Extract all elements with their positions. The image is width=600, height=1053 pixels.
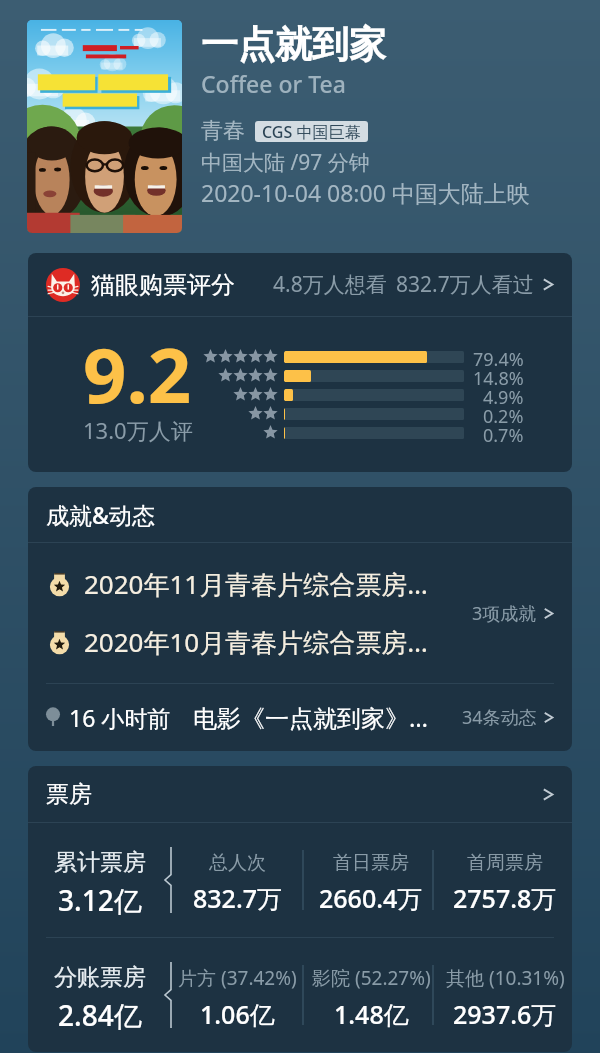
staticText: 0.2% (483, 404, 524, 423)
staticText: 9.2 (83, 322, 192, 426)
staticText: 片方 (37.42%) (178, 965, 297, 991)
staticText: 3.12亿 (58, 881, 142, 919)
staticText: 13.0万人评 (83, 415, 193, 445)
staticText: 79.4% (473, 347, 524, 366)
staticText: 电影《一点就到家》… (193, 701, 428, 734)
staticText: 成就&动态 (46, 499, 155, 530)
button[interactable]: 猫眼购票评分 (28, 253, 572, 316)
staticText: 青春 (201, 117, 245, 145)
staticText: 2757.8万 (453, 881, 557, 915)
staticText: 4.9% (483, 385, 524, 404)
staticText: 3项成就 (472, 601, 537, 626)
staticText: 2020-10-04 08:00 中国大陆上映 (201, 177, 530, 208)
staticText: 14.8% (473, 366, 524, 385)
button[interactable]: 票房 (28, 766, 572, 822)
staticText: 首日票房 (333, 851, 409, 875)
button[interactable]: Movie poster (27, 20, 182, 233)
staticText: 猫眼购票评分 (91, 270, 235, 300)
button[interactable]: 成就&动态 (28, 487, 572, 542)
staticText: 1.48亿 (334, 997, 409, 1031)
staticText: 2020年11月青春片综合票房… (84, 566, 428, 602)
staticText: 832.7万 (193, 881, 283, 915)
staticText: 0.7% (483, 423, 524, 442)
staticText: 中国大陆 /97 分钟 (201, 148, 370, 177)
staticText: 2937.6万 (453, 997, 557, 1031)
staticText: 2.84亿 (58, 996, 142, 1034)
staticText: 4.8万人想看 (273, 270, 387, 299)
staticText: 2660.4万 (319, 881, 423, 915)
staticText: CGS 中国巨幕 (262, 121, 361, 142)
staticText: 票房 (46, 780, 92, 809)
staticText: 总人次 (209, 851, 266, 875)
button[interactable]: 16 小时前 (28, 684, 572, 751)
staticText: 影院 (52.27%) (312, 965, 431, 991)
staticText: Coffee or Tea (201, 68, 346, 99)
staticText: 34条动态 (462, 705, 537, 730)
staticText: 2020年10月青春片综合票房… (84, 624, 428, 660)
staticText: 其他 (10.31%) (446, 965, 565, 991)
staticText: 832.7万人看过 (396, 270, 534, 299)
staticText: 一点就到家 (201, 21, 386, 68)
staticText: 分账票房 (54, 963, 146, 992)
staticText: 累计票房 (54, 848, 146, 877)
button[interactable]: 2020年11月青春片综合票房… (28, 543, 572, 683)
staticText: 16 小时前 (69, 702, 171, 733)
staticText: 1.06亿 (200, 997, 275, 1031)
staticText: 首周票房 (467, 851, 543, 875)
